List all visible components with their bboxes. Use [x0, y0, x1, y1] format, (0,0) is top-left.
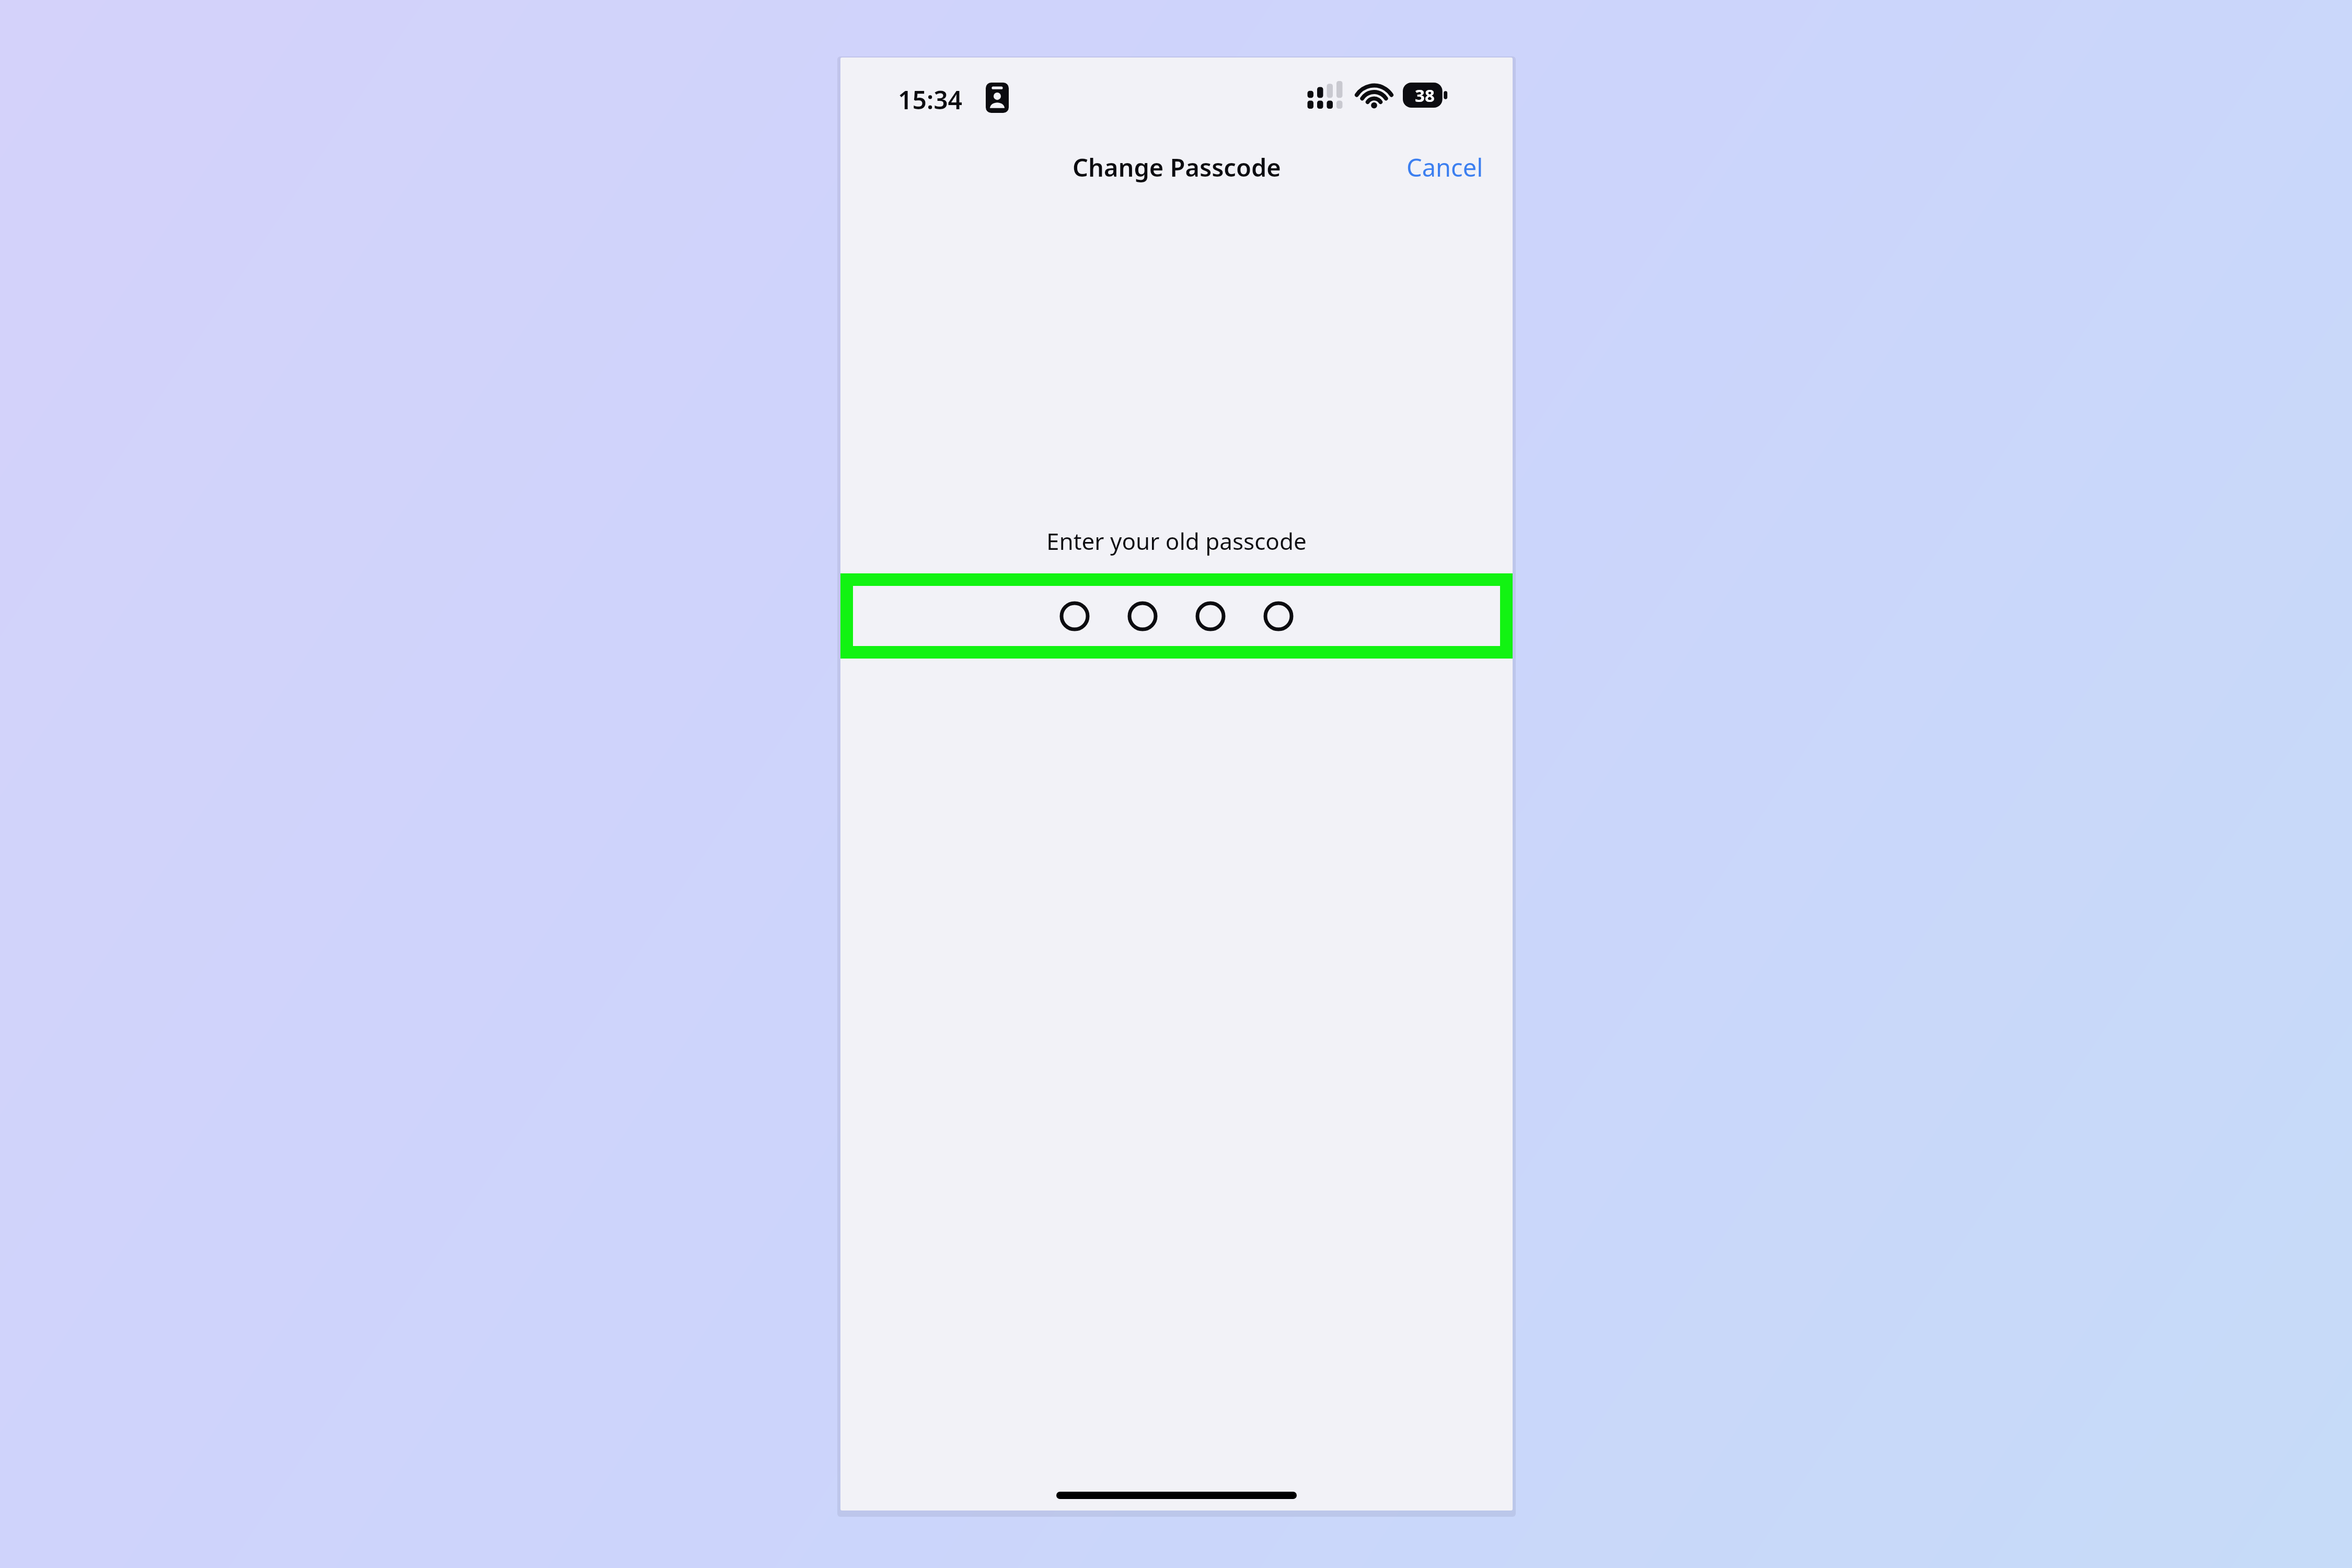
staticText: 15:34: [898, 83, 963, 117]
button[interactable]: Passcode entry field: [840, 573, 1513, 659]
staticText: 38: [1415, 84, 1435, 107]
button[interactable]: Cancel: [1402, 142, 1488, 192]
staticText: Enter your old passcode: [1046, 525, 1307, 557]
staticText: Cancel: [1406, 151, 1483, 184]
button[interactable]: Change Passcode: [1073, 151, 1281, 184]
other: Cellular signal: [1306, 82, 1344, 109]
other: Wi-Fi: [1358, 83, 1390, 107]
other: Battery 38 percent: [1403, 83, 1448, 108]
other: Screen recording indicator: [986, 83, 1009, 113]
staticText: Change Passcode: [1073, 151, 1281, 184]
